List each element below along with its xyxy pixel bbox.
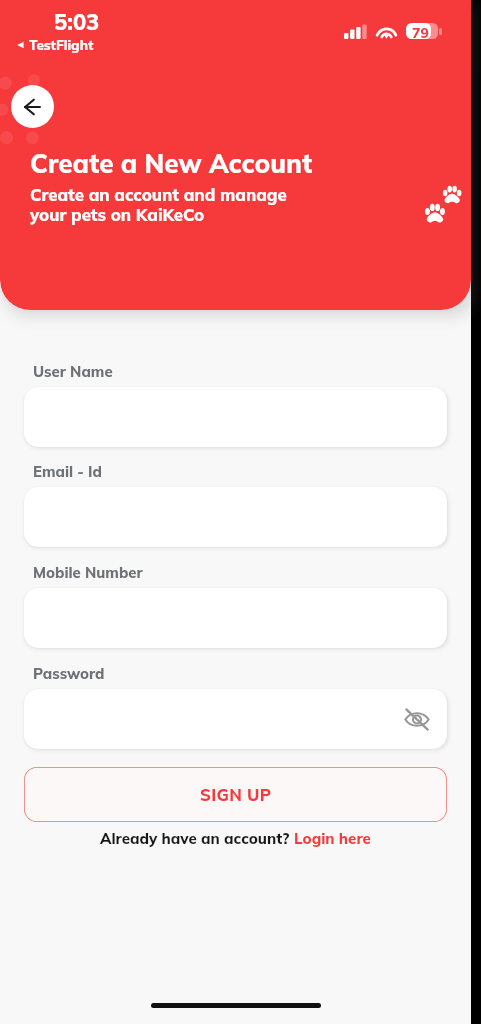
staticText: Mobile Number: [33, 563, 143, 582]
button[interactable]: Login here: [294, 829, 371, 848]
staticText: User Name: [33, 362, 113, 381]
staticText: Already have an account?: [100, 829, 294, 848]
button[interactable]: Show password: [400, 702, 434, 736]
button[interactable]: SIGN UP: [24, 767, 447, 822]
staticText: 79: [412, 24, 429, 39]
staticText: SIGN UP: [200, 784, 272, 805]
staticText: 5:03: [54, 8, 100, 36]
button[interactable]: Back: [11, 85, 54, 128]
staticText: Password: [33, 664, 105, 683]
staticText: Email - Id: [33, 462, 102, 481]
staticText: Create an account and manage your pets o…: [30, 184, 287, 225]
staticText: Create a New Account: [30, 147, 313, 180]
staticText: Login here: [294, 829, 371, 848]
staticText: TestFlight: [29, 36, 94, 53]
button[interactable]: Show password: [24, 689, 447, 749]
